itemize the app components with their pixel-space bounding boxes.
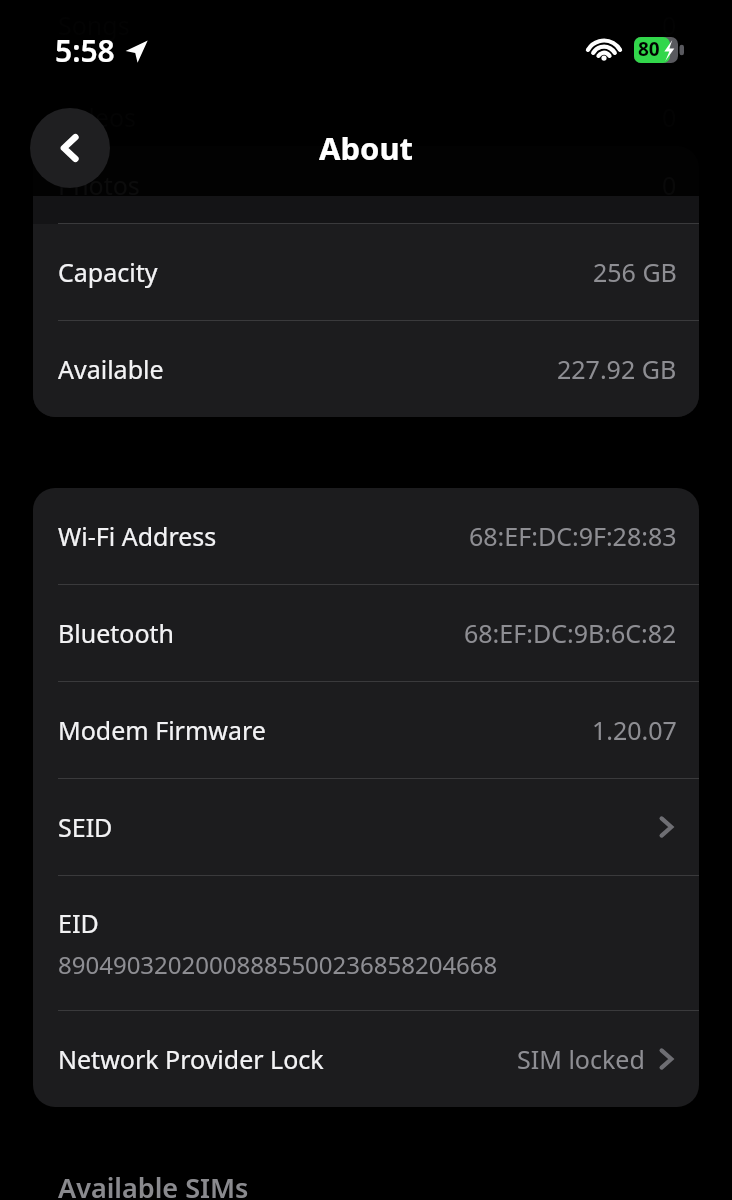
button[interactable]: Bluetooth bbox=[33, 585, 699, 681]
button[interactable]: Modem Firmware bbox=[33, 682, 699, 778]
staticText: 0 bbox=[662, 168, 677, 202]
staticText: About bbox=[0, 127, 732, 169]
button[interactable]: Wi-Fi Address bbox=[33, 488, 699, 584]
staticText: 89049032020008885500236858204668 bbox=[58, 948, 498, 981]
staticText: Available SIMs bbox=[58, 1169, 249, 1200]
staticText: 227.92 GB bbox=[557, 352, 677, 386]
staticText: 256 GB bbox=[593, 255, 677, 289]
staticText: 68:EF:DC:9B:6C:82 bbox=[464, 616, 677, 650]
button[interactable]: Photos bbox=[33, 146, 699, 223]
button[interactable]: EID bbox=[33, 876, 699, 1010]
staticText: Wi-Fi Address bbox=[58, 519, 217, 553]
staticText: 80 bbox=[638, 36, 660, 62]
staticText: EID bbox=[58, 906, 99, 940]
staticText: SEID bbox=[58, 810, 113, 844]
staticText: Photos bbox=[58, 168, 140, 202]
staticText: Videos bbox=[58, 100, 137, 134]
staticText: Capacity bbox=[58, 255, 158, 289]
button[interactable]: Available bbox=[33, 321, 699, 417]
button[interactable]: Capacity bbox=[33, 224, 699, 320]
staticText: 1.20.07 bbox=[592, 713, 677, 747]
staticText: Available bbox=[58, 352, 164, 386]
staticText: 68:EF:DC:9F:28:83 bbox=[469, 519, 677, 553]
staticText: 5:58 bbox=[55, 30, 115, 71]
staticText: SIM locked bbox=[517, 1042, 645, 1076]
button[interactable]: Back bbox=[30, 108, 110, 188]
staticText: Network Provider Lock bbox=[58, 1042, 324, 1076]
staticText: Songs bbox=[58, 8, 130, 42]
staticText: Modem Firmware bbox=[58, 713, 266, 747]
staticText: 0 bbox=[662, 8, 677, 42]
button[interactable]: Network Provider Lock bbox=[33, 1011, 699, 1107]
button[interactable]: SEID bbox=[33, 779, 699, 875]
staticText: Bluetooth bbox=[58, 616, 175, 650]
